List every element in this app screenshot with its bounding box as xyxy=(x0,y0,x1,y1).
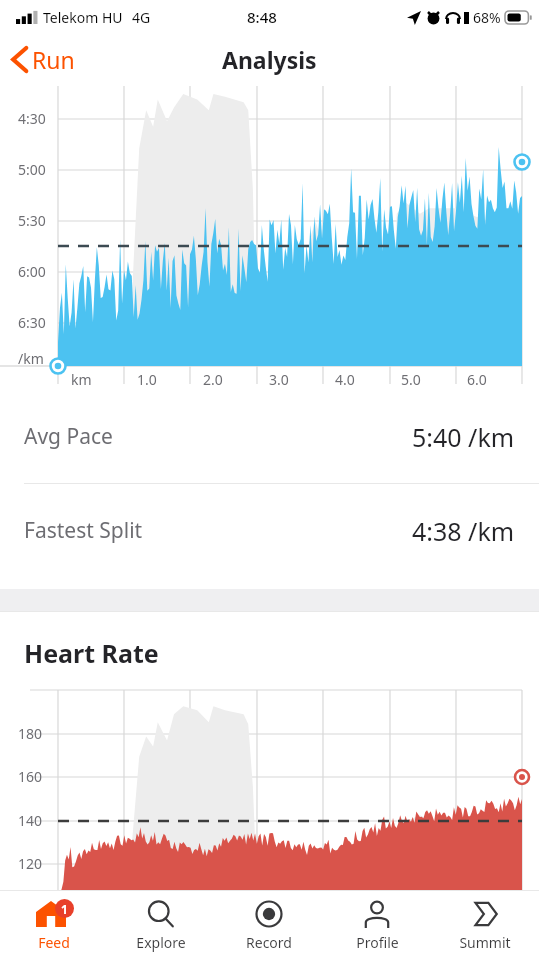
staticText: 140 xyxy=(18,811,43,830)
staticText: 180 xyxy=(18,724,43,743)
staticText: 5.0 xyxy=(401,370,421,389)
staticText: Profile xyxy=(356,933,399,952)
button[interactable]: Summit xyxy=(431,891,539,960)
button[interactable]: Run xyxy=(0,40,87,79)
staticText: Analysis xyxy=(222,44,317,75)
staticText: 4G xyxy=(132,8,151,27)
staticText: /km xyxy=(18,349,44,368)
staticText: 5:30 xyxy=(18,211,46,230)
button[interactable]: Avg Pace xyxy=(0,390,539,483)
staticText: 160 xyxy=(18,767,43,786)
staticText: Run xyxy=(32,44,75,75)
staticText: Summit xyxy=(459,933,511,952)
staticText: Explore xyxy=(136,933,186,952)
staticText: 120 xyxy=(18,854,43,873)
staticText: 5:40 /km xyxy=(412,420,515,454)
staticText: Feed xyxy=(38,933,70,952)
button[interactable]: Fastest Split xyxy=(0,484,539,577)
staticText: 4.0 xyxy=(335,370,355,389)
staticText: 1.0 xyxy=(137,370,157,389)
button[interactable]: Feed xyxy=(0,891,107,960)
staticText: 68% xyxy=(473,8,501,27)
staticText: 6.0 xyxy=(467,370,487,389)
button[interactable]: Record xyxy=(215,891,323,960)
staticText: Record xyxy=(246,933,292,952)
staticText: 6:00 xyxy=(18,262,46,281)
staticText: 1 xyxy=(61,901,68,917)
staticText: km xyxy=(71,370,92,389)
button[interactable]: Profile xyxy=(323,891,431,960)
staticText: 3.0 xyxy=(269,370,289,389)
staticText: 6:30 xyxy=(18,313,46,332)
button[interactable]: Explore xyxy=(107,891,215,960)
staticText: Heart Rate xyxy=(24,636,159,670)
staticText: 2.0 xyxy=(203,370,223,389)
staticText: 4:30 xyxy=(18,109,46,128)
staticText: Avg Pace xyxy=(24,422,113,451)
staticText: Telekom HU xyxy=(43,8,123,27)
staticText: Fastest Split xyxy=(24,516,143,545)
staticText: 4:38 /km xyxy=(412,514,515,548)
staticText: 5:00 xyxy=(18,160,46,179)
staticText: 8:48 xyxy=(247,7,277,27)
